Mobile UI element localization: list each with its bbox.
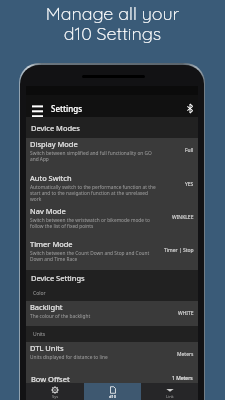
staticText: Bow Offset [31, 374, 172, 383]
button[interactable]: Backlight [26, 301, 198, 326]
staticText: WHITE [178, 310, 194, 317]
staticText: Nav Mode [30, 206, 66, 216]
button[interactable]: Display Mode [26, 138, 198, 172]
staticText: Device Settings [31, 273, 85, 283]
other: Bluetooth [186, 103, 194, 114]
staticText: Timer Mode [30, 239, 73, 249]
staticText: YES [185, 181, 194, 188]
staticText: Color [33, 290, 46, 297]
button[interactable]: System [26, 383, 84, 400]
staticText: Backlight [30, 302, 63, 312]
staticText: d10 [109, 394, 117, 399]
staticText: Switch between simplified and full funct… [30, 150, 157, 162]
staticText: Device Modes [31, 123, 80, 133]
staticText: Units [33, 331, 46, 338]
button[interactable]: d10 [84, 383, 141, 400]
button[interactable]: Bow Offset [26, 371, 198, 383]
button[interactable]: DTL Units [26, 342, 198, 371]
staticText: Display Mode [30, 139, 78, 149]
staticText: The colour of the backlight [30, 313, 91, 320]
staticText: Auto Switch [30, 173, 72, 183]
staticText: Settings [51, 103, 83, 114]
staticText: Units displayed for distance to line [30, 354, 108, 361]
button[interactable]: Timer Mode [26, 238, 198, 270]
other: Menu [32, 105, 43, 117]
staticText: Switch between the wristwatch or bikemod… [30, 217, 157, 229]
button[interactable]: Menu [26, 95, 198, 117]
staticText: Switch between the Count Down and Stop a… [30, 250, 157, 262]
staticText: Meters [177, 351, 194, 358]
staticText: Full [185, 147, 194, 154]
button[interactable]: Nav Mode [26, 205, 198, 238]
button[interactable]: Link [141, 383, 198, 400]
button[interactable]: Auto Switch [26, 172, 198, 205]
staticText: Manage all your d10 Settings [0, 2, 225, 45]
staticText: WINKLEE [172, 214, 194, 221]
staticText: Link [166, 394, 174, 399]
staticText: Timer | Stop [164, 247, 194, 254]
staticText: 1 Meters [172, 375, 193, 382]
staticText: DTL Units [30, 343, 64, 353]
staticText: Automatically switch to the performance … [30, 184, 157, 202]
staticText: Sys [52, 394, 59, 399]
